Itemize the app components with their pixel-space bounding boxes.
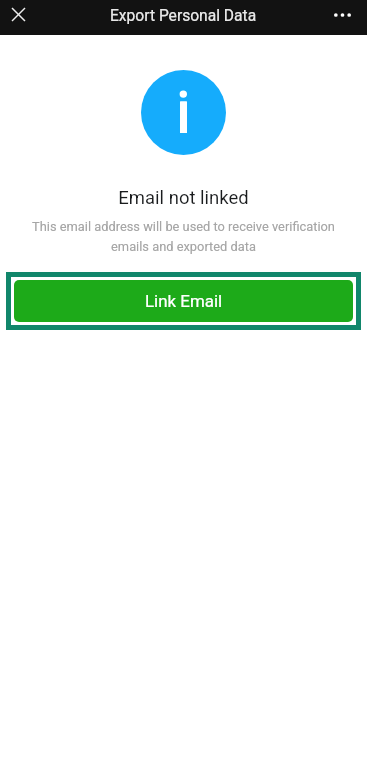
button[interactable]: Close bbox=[4, 0, 33, 29]
staticText: Email not linked bbox=[118, 187, 249, 209]
button[interactable]: More options bbox=[328, 0, 357, 29]
staticText: Link Email bbox=[145, 291, 223, 311]
staticText: This email address will be used to recei… bbox=[32, 219, 335, 254]
button[interactable]: Link Email bbox=[6, 272, 361, 330]
staticText: Export Personal Data bbox=[110, 7, 257, 25]
